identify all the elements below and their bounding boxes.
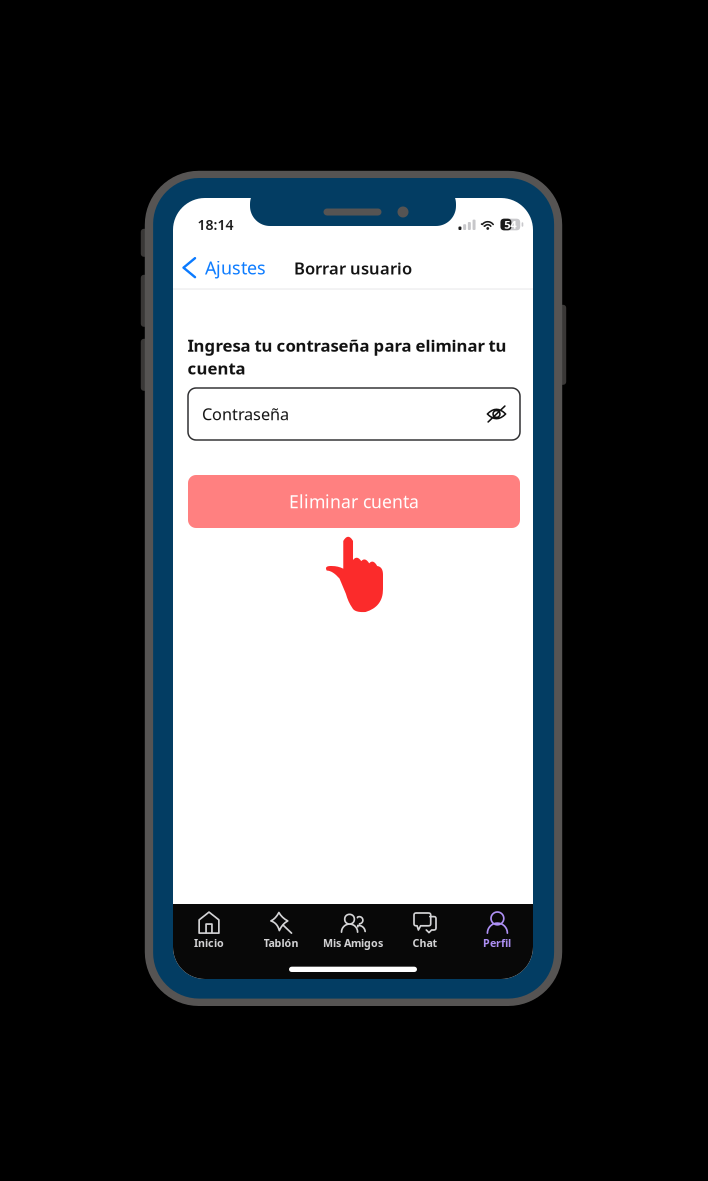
staticText: Chat xyxy=(412,936,437,950)
staticText: Inicio xyxy=(194,936,224,950)
button[interactable]: Ajustes xyxy=(173,247,274,288)
staticText: Contraseña xyxy=(202,403,289,425)
staticText: 54 xyxy=(504,217,516,232)
staticText: Borrar usuario xyxy=(294,257,412,279)
staticText: Ingresa tu contraseña para eliminar tu c… xyxy=(187,334,506,379)
staticText: Eliminar cuenta xyxy=(289,489,419,513)
staticText: Tablón xyxy=(263,936,298,950)
button[interactable]: Eliminar cuenta xyxy=(188,475,520,528)
button[interactable]: Tablón xyxy=(245,904,317,979)
button[interactable]: Perfil xyxy=(461,904,533,979)
button[interactable]: Chat xyxy=(389,904,461,979)
staticText: 18:14 xyxy=(197,215,233,234)
button[interactable]: Mis Amigos xyxy=(317,904,389,979)
button[interactable]: Inicio xyxy=(173,904,245,979)
staticText: Mis Amigos xyxy=(323,936,383,950)
staticText: Ajustes xyxy=(205,255,266,280)
staticText: Perfil xyxy=(483,936,511,950)
